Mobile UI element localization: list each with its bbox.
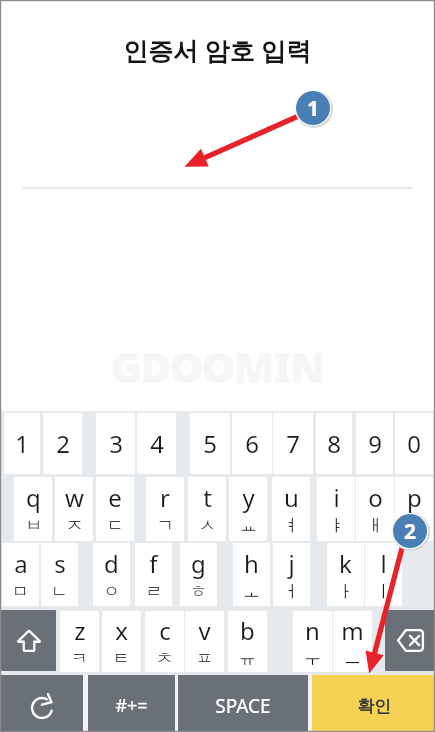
button[interactable]: i bbox=[317, 477, 355, 541]
button[interactable]: 0 bbox=[395, 413, 433, 474]
staticText: h bbox=[244, 547, 259, 580]
button[interactable]: v bbox=[185, 611, 224, 672]
button[interactable]: p bbox=[395, 477, 433, 541]
staticText: c bbox=[159, 614, 171, 647]
button[interactable]: 5 bbox=[190, 413, 230, 474]
button[interactable]: u bbox=[272, 477, 310, 541]
staticText: n bbox=[305, 614, 320, 647]
button[interactable]: 1 bbox=[4, 413, 40, 474]
staticText: ㅡ bbox=[344, 648, 361, 669]
staticText: 1 bbox=[307, 94, 320, 123]
staticText: s bbox=[54, 547, 66, 580]
staticText: ㅣ bbox=[375, 581, 392, 602]
button[interactable]: e bbox=[96, 477, 134, 541]
button[interactable]: m bbox=[333, 611, 372, 672]
staticText: 9 bbox=[368, 427, 382, 460]
staticText: t bbox=[203, 481, 212, 514]
staticText: r bbox=[160, 481, 170, 514]
button[interactable]: w bbox=[55, 477, 93, 541]
button[interactable]: d bbox=[93, 543, 130, 606]
staticText: w bbox=[65, 481, 84, 514]
button[interactable]: 6 bbox=[232, 413, 272, 474]
staticText: ㅛ bbox=[240, 515, 257, 536]
button[interactable]: s bbox=[41, 543, 78, 606]
button[interactable]: f bbox=[135, 543, 172, 606]
button[interactable]: g bbox=[180, 543, 217, 606]
button[interactable]: z bbox=[60, 611, 99, 672]
staticText: ㅎ bbox=[190, 581, 207, 602]
staticText: d bbox=[104, 547, 119, 580]
staticText: k bbox=[339, 547, 352, 580]
staticText: e bbox=[108, 481, 122, 514]
button[interactable]: o bbox=[356, 477, 394, 541]
staticText: 6 bbox=[245, 427, 259, 460]
staticText: ㅂ bbox=[25, 515, 42, 536]
staticText: 확인 bbox=[357, 696, 391, 717]
staticText: 2 bbox=[404, 517, 417, 546]
staticText: 3 bbox=[109, 427, 123, 460]
staticText: f bbox=[149, 547, 158, 580]
staticText: ㅜ bbox=[304, 648, 321, 669]
button[interactable]: x bbox=[102, 611, 141, 672]
staticText: ㅌ bbox=[113, 648, 130, 669]
staticText: ㅗ bbox=[243, 581, 260, 602]
staticText: ㄷ bbox=[107, 515, 124, 536]
button[interactable]: r bbox=[146, 477, 184, 541]
staticText: ㅑ bbox=[328, 515, 345, 536]
button[interactable]: y bbox=[229, 477, 267, 541]
staticText: 8 bbox=[327, 427, 341, 460]
staticText: ㅇ bbox=[103, 581, 120, 602]
staticText: ㅕ bbox=[283, 515, 300, 536]
staticText: ㅏ bbox=[337, 581, 354, 602]
staticText: ㅊ bbox=[156, 648, 173, 669]
staticText: ㅠ bbox=[239, 648, 256, 669]
staticText: q bbox=[26, 481, 41, 514]
button[interactable]: 확인 bbox=[312, 675, 435, 732]
staticText: ㅋ bbox=[71, 648, 88, 669]
staticText: ㄴ bbox=[51, 581, 68, 602]
staticText: 5 bbox=[203, 427, 217, 460]
staticText: b bbox=[240, 614, 255, 647]
button[interactable]: 2 bbox=[43, 413, 82, 474]
button[interactable]: 3 bbox=[96, 413, 135, 474]
button[interactable]: j bbox=[273, 543, 310, 606]
button[interactable]: Shift bbox=[1, 610, 56, 671]
button[interactable]: l bbox=[365, 543, 402, 606]
button[interactable]: q bbox=[14, 477, 52, 541]
staticText: ㅓ bbox=[283, 581, 300, 602]
button[interactable]: 8 bbox=[316, 413, 352, 474]
staticText: i bbox=[333, 481, 340, 514]
button[interactable]: n bbox=[293, 611, 332, 672]
button[interactable]: b bbox=[228, 611, 267, 672]
button[interactable]: #+= bbox=[88, 675, 175, 732]
button[interactable]: a bbox=[2, 543, 39, 606]
button[interactable]: c bbox=[145, 611, 184, 672]
staticText: o bbox=[368, 481, 383, 514]
staticText: a bbox=[14, 547, 28, 580]
staticText: x bbox=[115, 614, 128, 647]
button[interactable]: 4 bbox=[137, 413, 176, 474]
staticText: z bbox=[74, 614, 86, 647]
staticText: 0 bbox=[407, 427, 421, 460]
staticText: SPACE bbox=[215, 693, 271, 719]
button[interactable]: 7 bbox=[273, 413, 313, 474]
staticText: j bbox=[288, 547, 295, 580]
staticText: ㅐ bbox=[367, 515, 384, 536]
staticText: ㅅ bbox=[199, 515, 216, 536]
staticText: u bbox=[284, 481, 299, 514]
button[interactable]: k bbox=[327, 543, 364, 606]
button[interactable]: Refresh bbox=[0, 675, 83, 732]
staticText: #+= bbox=[115, 693, 148, 718]
staticText: ㄱ bbox=[157, 515, 174, 536]
button[interactable]: 9 bbox=[356, 413, 393, 474]
staticText: 4 bbox=[150, 427, 164, 460]
button[interactable]: h bbox=[233, 543, 270, 606]
staticText: GDOOMIN bbox=[111, 338, 324, 395]
button[interactable]: t bbox=[188, 477, 226, 541]
staticText: g bbox=[191, 547, 206, 580]
staticText: 1 bbox=[15, 427, 29, 460]
staticText: 인증서 암호 입력 bbox=[123, 33, 312, 67]
button[interactable]: SPACE bbox=[178, 675, 308, 732]
button[interactable]: Backspace bbox=[385, 610, 435, 671]
staticText: 7 bbox=[286, 427, 300, 460]
